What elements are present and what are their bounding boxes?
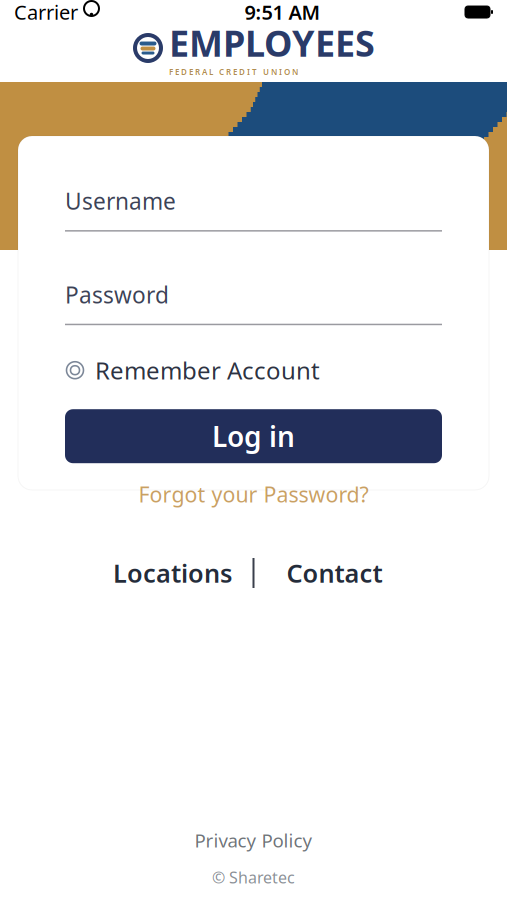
button[interactable]: Forgot your Password? [65,481,442,507]
staticText: Locations [113,556,232,590]
staticText: 9:51 AM [244,0,320,25]
staticText: F E D E R A L C R E D I T U N I O N [169,67,298,77]
button[interactable]: Remember Account [65,355,442,385]
staticText: Carrier [14,0,78,25]
button[interactable]: Log in [65,409,442,463]
button[interactable]: Privacy Policy [194,828,312,853]
staticText: Username [65,186,176,216]
staticText: Privacy Policy [194,828,312,853]
staticText: Forgot your Password? [138,480,368,508]
staticText: Remember Account [95,354,320,386]
staticText: Contact [286,556,382,590]
button[interactable]: Locations [92,550,252,596]
staticText: Password [65,280,169,310]
staticText [78,0,83,25]
staticText: Log in [212,418,295,455]
staticText: EMPLOYEES [169,19,375,67]
button[interactable]: Contact [254,550,414,596]
staticText: © Sharetec [212,867,295,888]
